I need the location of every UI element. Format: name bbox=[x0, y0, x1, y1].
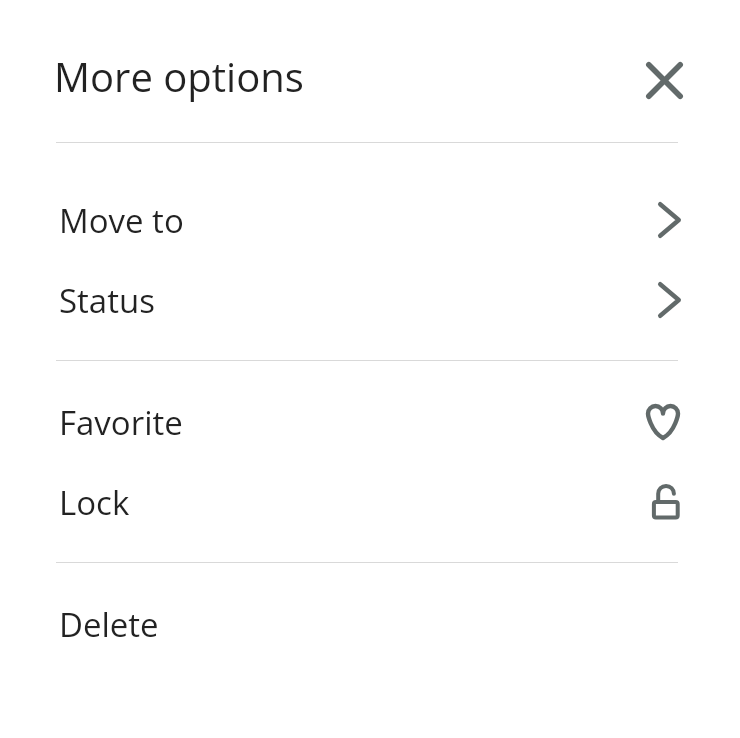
staticText: Favorite bbox=[59, 400, 183, 445]
button[interactable]: Delete bbox=[0, 584, 740, 664]
button[interactable]: Lock bbox=[0, 462, 740, 542]
button[interactable]: Favorite bbox=[0, 382, 740, 462]
staticText: Status bbox=[59, 278, 155, 323]
button[interactable]: Move to bbox=[0, 180, 740, 260]
staticText: Lock bbox=[59, 480, 130, 525]
staticText: More options bbox=[54, 49, 304, 103]
staticText: Move to bbox=[59, 198, 184, 243]
button[interactable]: Close bbox=[634, 50, 694, 110]
staticText: Delete bbox=[59, 602, 159, 647]
button[interactable]: Status bbox=[0, 260, 740, 340]
